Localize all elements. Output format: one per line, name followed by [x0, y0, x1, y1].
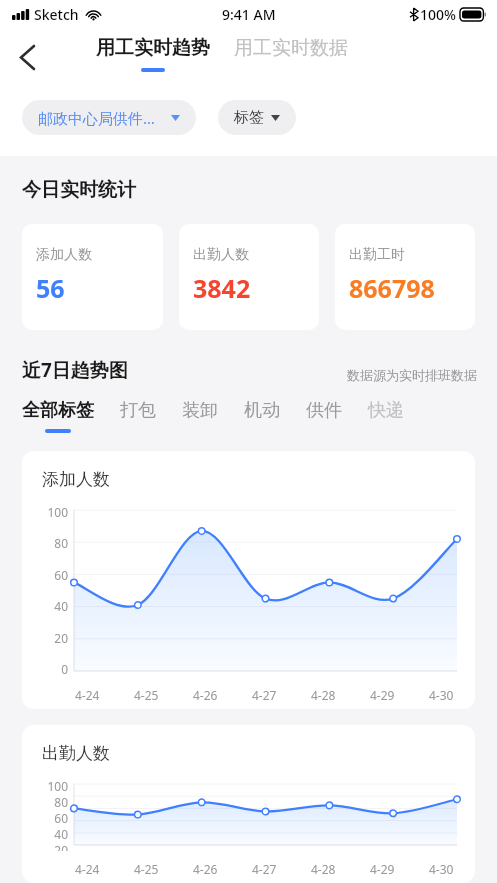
button[interactable]: 机动 [244, 399, 280, 422]
staticText: 出勤人数 [42, 743, 110, 764]
staticText: 数据源为实时排班数据 [347, 367, 477, 383]
staticText: 866798 [349, 271, 435, 305]
staticText: 邮政中心局供件… [38, 108, 155, 128]
staticText: 4-27 [252, 687, 277, 703]
button[interactable]: 用工实时数据 [234, 36, 348, 60]
staticText: 4-29 [370, 687, 395, 703]
staticText: 4-25 [134, 687, 159, 703]
staticText: 出勤工时 [349, 246, 405, 264]
staticText: 20 [54, 630, 68, 646]
staticText: 40 [54, 826, 68, 842]
button[interactable]: 全部标签 [22, 399, 94, 433]
staticText: 60 [54, 810, 68, 826]
staticText: 添加人数 [36, 246, 92, 264]
staticText: 用工实时数据 [234, 36, 348, 60]
staticText: Sketch [34, 5, 79, 24]
staticText: 打包 [120, 399, 156, 422]
staticText: 近7日趋势图 [22, 357, 128, 383]
button[interactable]: 添加人数 [22, 224, 163, 330]
staticText: 快递 [368, 399, 404, 422]
button[interactable]: 出勤工时 [335, 224, 475, 330]
staticText: 装卸 [182, 399, 218, 422]
staticText: 4-30 [429, 861, 454, 877]
staticText: 100% [420, 5, 456, 24]
staticText: 80 [54, 535, 68, 551]
staticText: 用工实时趋势 [96, 36, 210, 60]
staticText: 20 [54, 842, 68, 851]
staticText: 供件 [306, 399, 342, 422]
staticText: 标签 [234, 108, 264, 127]
staticText: 60 [54, 567, 68, 583]
staticText: 全部标签 [22, 399, 94, 422]
staticText: 100 [47, 778, 68, 794]
button[interactable]: 出勤人数 [179, 224, 319, 330]
staticText: 今日实时统计 [22, 178, 136, 202]
staticText: 40 [54, 598, 68, 614]
button[interactable]: 邮政中心局供件… [22, 100, 196, 135]
staticText: 4-26 [193, 861, 218, 877]
button[interactable]: 装卸 [182, 399, 218, 422]
staticText: 4-30 [429, 687, 454, 703]
staticText: 4-24 [75, 687, 100, 703]
staticText: 机动 [244, 399, 280, 422]
staticText: 4-26 [193, 687, 218, 703]
staticText: 0 [61, 661, 68, 677]
button[interactable]: 快递 [368, 399, 404, 422]
staticText: 4-28 [311, 687, 336, 703]
staticText: 56 [36, 271, 65, 305]
staticText: 4-28 [311, 861, 336, 877]
button[interactable]: Back [0, 30, 54, 84]
staticText: 4-29 [370, 861, 395, 877]
staticText: 添加人数 [42, 469, 110, 490]
staticText: 3842 [193, 271, 251, 305]
staticText: 80 [54, 794, 68, 810]
staticText: 9:41 AM [222, 5, 276, 24]
staticText: 4-24 [75, 861, 100, 877]
button[interactable]: 标签 [218, 100, 296, 135]
button[interactable]: 打包 [120, 399, 156, 422]
staticText: 4-27 [252, 861, 277, 877]
button[interactable]: 用工实时趋势 [96, 36, 210, 72]
staticText: 100 [47, 504, 68, 520]
button[interactable]: 供件 [306, 399, 342, 422]
staticText: 出勤人数 [193, 246, 249, 264]
staticText: 4-25 [134, 861, 159, 877]
